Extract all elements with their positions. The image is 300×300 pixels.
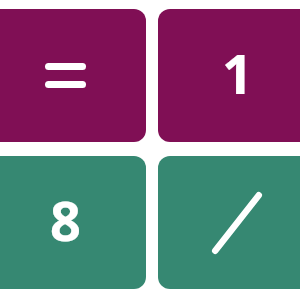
button[interactable]: One: [158, 9, 300, 142]
staticText: 1: [222, 36, 253, 110]
button[interactable]: Divide: [158, 156, 300, 289]
button[interactable]: Eight: [0, 156, 146, 289]
staticText: 8: [50, 183, 81, 257]
button[interactable]: Equals: [0, 9, 146, 142]
